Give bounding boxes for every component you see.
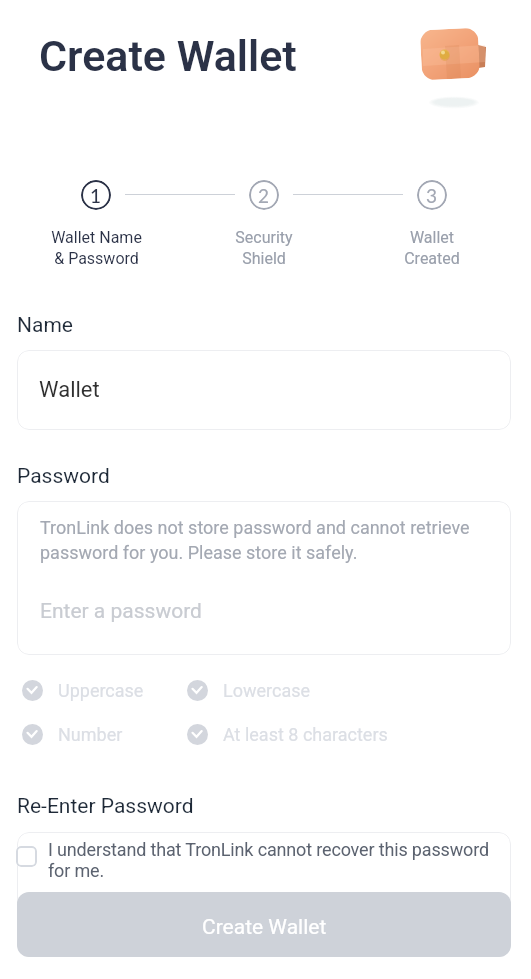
button[interactable]: Uppercase bbox=[22, 680, 144, 701]
staticText: I understand that TronLink cannot recove… bbox=[48, 839, 489, 881]
button[interactable]: Step 1: Wallet Name and Password bbox=[81, 180, 111, 210]
staticText: 2 bbox=[258, 184, 270, 207]
button[interactable]: TronLink does not store password and can… bbox=[17, 501, 511, 655]
staticText: Wallet bbox=[39, 377, 100, 403]
button[interactable]: Wallet bbox=[17, 350, 511, 430]
staticText: TronLink does not store password and can… bbox=[40, 517, 470, 563]
staticText: Create Wallet bbox=[202, 915, 327, 940]
staticText: Name bbox=[17, 313, 73, 338]
button[interactable]: Number bbox=[22, 724, 123, 745]
staticText: Re-Enter Password bbox=[17, 794, 194, 819]
staticText: Uppercase bbox=[58, 680, 144, 701]
button[interactable]: Create Wallet bbox=[17, 892, 511, 957]
other: Wallet illustration bbox=[414, 20, 504, 110]
staticText: Create Wallet bbox=[39, 31, 297, 81]
button[interactable]: Step 2: Security Shield bbox=[249, 180, 279, 210]
button[interactable]: Step 3: Wallet Created bbox=[417, 180, 447, 210]
staticText: Wallet Created bbox=[404, 228, 460, 268]
staticText: Lowercase bbox=[223, 680, 311, 701]
staticText: Password bbox=[17, 464, 110, 489]
staticText: Security Shield bbox=[235, 228, 293, 268]
staticText: Enter a password bbox=[40, 599, 202, 624]
button[interactable]: Lowercase bbox=[187, 680, 311, 701]
staticText: 3 bbox=[426, 184, 438, 207]
button[interactable]: I understand that TronLink cannot recove… bbox=[16, 839, 489, 881]
button[interactable]: At least 8 characters bbox=[187, 724, 388, 745]
staticText: At least 8 characters bbox=[223, 724, 388, 745]
staticText: Wallet Name & Password bbox=[51, 228, 142, 268]
staticText: Number bbox=[58, 724, 123, 745]
staticText: 1 bbox=[90, 184, 102, 207]
